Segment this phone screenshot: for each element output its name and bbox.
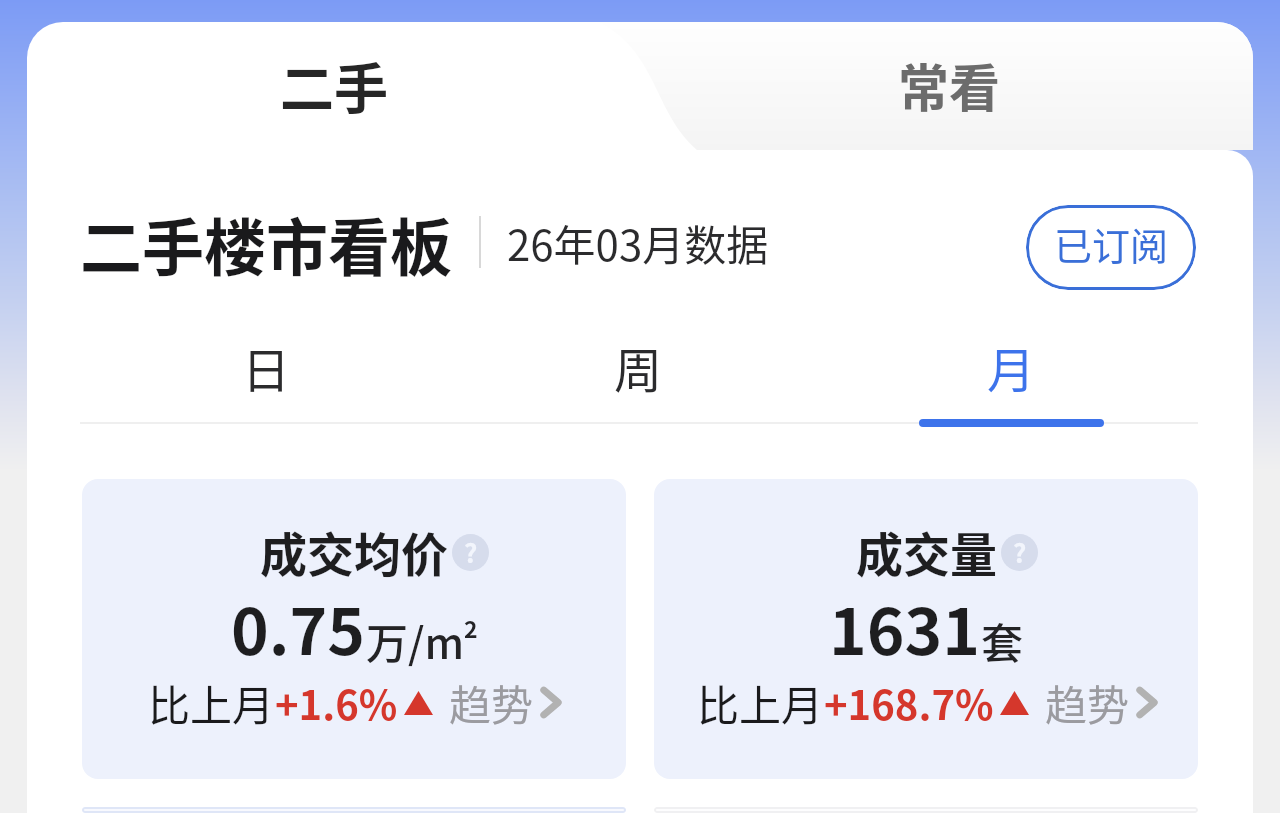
- staticText: 1631: [829, 581, 981, 674]
- button[interactable]: 已订阅: [1026, 205, 1196, 290]
- button[interactable]: 指标说明: [1001, 534, 1038, 571]
- staticText: 成交均价: [260, 517, 448, 585]
- staticText: 成交量: [856, 517, 997, 585]
- button[interactable]: 日: [80, 315, 452, 419]
- staticText: 二手楼市看板: [80, 199, 453, 285]
- staticText: 0.75: [231, 581, 366, 674]
- button[interactable]: 趋势: [449, 672, 560, 733]
- staticText: 月: [987, 332, 1036, 402]
- staticText: 比上月: [697, 672, 824, 733]
- button[interactable]: 指标说明: [452, 534, 489, 571]
- staticText: 日: [242, 332, 291, 402]
- staticText: 万/m: [366, 610, 464, 671]
- staticText: 趋势: [1045, 672, 1130, 733]
- button[interactable]: [82, 807, 626, 813]
- staticText: 趋势: [449, 672, 534, 733]
- button[interactable]: 趋势: [1045, 672, 1156, 733]
- button[interactable]: 成交量: [654, 479, 1198, 779]
- staticText: 套: [981, 610, 1024, 671]
- staticText: 已订阅: [1054, 216, 1169, 271]
- staticText: 二手: [280, 46, 388, 124]
- button[interactable]: 周: [452, 315, 825, 419]
- staticText: ?: [464, 534, 478, 570]
- staticText: 比上月: [148, 672, 275, 733]
- staticText: 常看: [898, 48, 1001, 122]
- staticText: 周: [614, 332, 663, 402]
- button[interactable]: 月: [825, 315, 1198, 419]
- button[interactable]: 成交均价: [82, 479, 626, 779]
- staticText: ?: [1013, 534, 1027, 570]
- button[interactable]: [654, 807, 1198, 813]
- button[interactable]: 二手: [27, 22, 641, 150]
- staticText: +1.6%: [275, 674, 398, 732]
- staticText: +168.7%: [824, 674, 994, 732]
- staticText: 26年03月数据: [507, 212, 769, 273]
- button[interactable]: 常看: [641, 22, 1253, 150]
- staticText: 2: [464, 611, 478, 644]
